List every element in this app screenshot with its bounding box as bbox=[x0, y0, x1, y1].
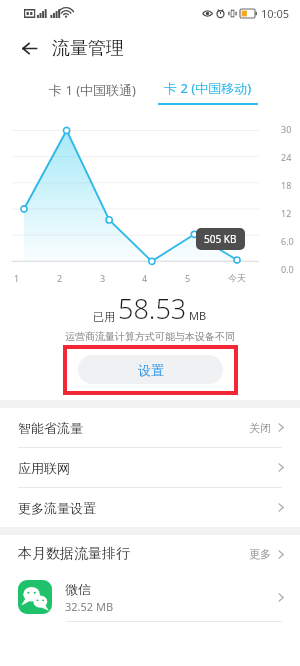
button[interactable]: 更多 bbox=[249, 547, 286, 561]
staticText: 微信 bbox=[65, 581, 91, 597]
staticText: 3 bbox=[100, 272, 106, 284]
staticText: 智能省流量 bbox=[18, 420, 83, 436]
button[interactable]: 智能省流量 bbox=[0, 408, 300, 447]
staticText: 32.52 MB bbox=[65, 599, 114, 614]
staticText: 运营商流量计算方式可能与本设备不同 bbox=[0, 330, 300, 343]
staticText: 505 KB bbox=[204, 232, 237, 246]
staticText: 已用 bbox=[93, 310, 115, 324]
staticText: 今天 bbox=[228, 272, 246, 283]
staticText: 卡 1 (中国联通) bbox=[49, 81, 136, 99]
staticText: 0.0 bbox=[281, 263, 294, 275]
button[interactable]: 应用联网 bbox=[0, 448, 300, 487]
button[interactable]: 微信 bbox=[0, 573, 300, 621]
staticText: 4 bbox=[142, 272, 148, 284]
staticText: 24 bbox=[281, 151, 292, 163]
button[interactable]: 更多流量设置 bbox=[0, 488, 300, 527]
staticText: 设置 bbox=[138, 362, 164, 378]
staticText: 18 bbox=[281, 179, 292, 191]
button[interactable]: 卡 2 (中国移动) bbox=[156, 76, 260, 105]
button[interactable]: 卡 1 (中国联通) bbox=[41, 75, 144, 105]
staticText: 本月数据流量排行 bbox=[18, 545, 130, 563]
staticText: 更多 bbox=[249, 547, 271, 561]
staticText: MB bbox=[189, 308, 207, 323]
button[interactable]: Back bbox=[14, 33, 44, 63]
staticText: 1 bbox=[14, 272, 20, 284]
button[interactable]: 设置 bbox=[78, 355, 223, 384]
staticText: 应用联网 bbox=[18, 460, 70, 476]
staticText: 更多流量设置 bbox=[18, 500, 96, 516]
staticText: 关闭 bbox=[249, 421, 271, 435]
staticText: 30 bbox=[281, 123, 292, 135]
staticText: 12 bbox=[281, 207, 292, 219]
staticText: 6.0 bbox=[281, 235, 294, 247]
staticText: 流量管理 bbox=[52, 37, 124, 60]
staticText: 58.53 bbox=[118, 290, 187, 327]
staticText: 卡 2 (中国移动) bbox=[164, 79, 252, 97]
staticText: 10:05 bbox=[261, 6, 290, 21]
staticText: 5 bbox=[185, 272, 191, 284]
staticText: 2 bbox=[57, 272, 63, 284]
